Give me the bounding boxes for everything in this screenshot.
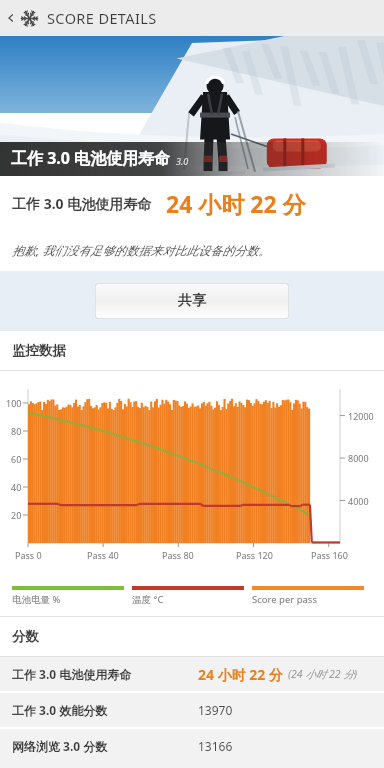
staticText: (24 小时 22 分): [288, 667, 357, 681]
staticText: Pass 40: [87, 549, 119, 561]
button[interactable]: 工作 3.0 效能分数: [0, 693, 384, 727]
staticText: 工作 3.0 效能分数: [12, 702, 108, 718]
staticText: 60: [11, 453, 22, 465]
staticText: Pass 80: [162, 549, 194, 561]
staticText: 80: [11, 425, 22, 437]
staticText: 工作 3.0 电池使用寿命: [12, 666, 132, 682]
staticText: 电池电量 %: [12, 593, 61, 606]
staticText: 40: [11, 481, 22, 493]
staticText: SCORE DETAILS: [47, 8, 157, 28]
button[interactable]: 工作 3.0 电池使用寿命: [0, 657, 384, 691]
staticText: 共享: [178, 292, 206, 310]
staticText: 3.0: [176, 155, 189, 167]
staticText: 100: [6, 397, 22, 409]
staticText: 温度 °C: [132, 593, 164, 606]
staticText: 工作 3.0 电池使用寿命: [12, 194, 152, 213]
staticText: 13166: [198, 738, 233, 754]
staticText: 网络浏览 3.0 分数: [12, 738, 108, 754]
staticText: 24 小时 22 分: [166, 188, 306, 219]
staticText: 24 小时 22 分: [198, 665, 283, 684]
staticText: Pass 120: [236, 549, 273, 561]
button[interactable]: 网络浏览 3.0 分数: [0, 729, 384, 763]
staticText: 20: [11, 509, 22, 521]
staticText: 4000: [348, 495, 369, 507]
button[interactable]: 共享: [95, 283, 289, 319]
staticText: 抱歉, 我们没有足够的数据来对比此设备的分数。: [12, 242, 271, 258]
button[interactable]: Back: [4, 0, 18, 36]
staticText: Pass 0: [15, 549, 42, 561]
staticText: 12000: [348, 410, 374, 422]
staticText: 分数: [12, 628, 39, 645]
staticText: 监控数据: [12, 342, 66, 359]
staticText: 13970: [198, 702, 233, 718]
staticText: Score per pass: [252, 593, 317, 606]
staticText: 8000: [348, 452, 369, 464]
staticText: 工作 3.0 电池使用寿命: [11, 147, 171, 169]
other: App icon: [18, 7, 40, 29]
staticText: Pass 160: [311, 549, 348, 561]
